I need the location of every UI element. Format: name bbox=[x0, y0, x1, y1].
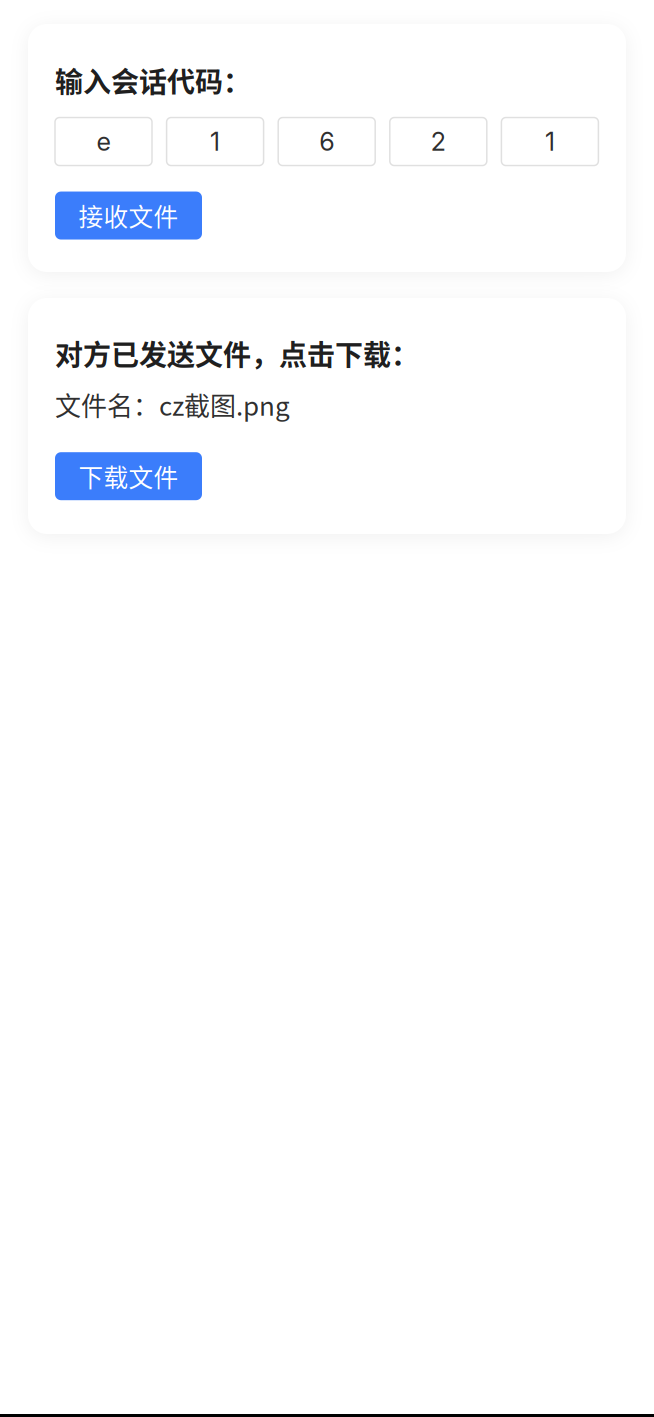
staticText: 1 bbox=[545, 126, 555, 157]
staticText: 对方已发送文件，点击下载： bbox=[55, 333, 419, 373]
staticText: 接收文件 bbox=[78, 198, 178, 233]
button[interactable]: 下载文件 bbox=[55, 452, 202, 500]
staticText: 文件名：cz截图.png bbox=[55, 385, 290, 423]
staticText: e bbox=[96, 126, 110, 157]
staticText: 2 bbox=[431, 126, 446, 157]
button[interactable]: 6 bbox=[278, 117, 375, 165]
button[interactable]: 接收文件 bbox=[55, 191, 202, 239]
staticText: 下载文件 bbox=[78, 458, 178, 494]
button[interactable]: 2 bbox=[390, 117, 487, 165]
staticText: 6 bbox=[319, 126, 334, 157]
button[interactable]: 1 bbox=[167, 117, 264, 165]
staticText: 输入会话代码： bbox=[55, 60, 251, 100]
staticText: 1 bbox=[210, 126, 220, 157]
button[interactable]: e bbox=[55, 117, 152, 165]
button[interactable]: 1 bbox=[501, 117, 598, 165]
